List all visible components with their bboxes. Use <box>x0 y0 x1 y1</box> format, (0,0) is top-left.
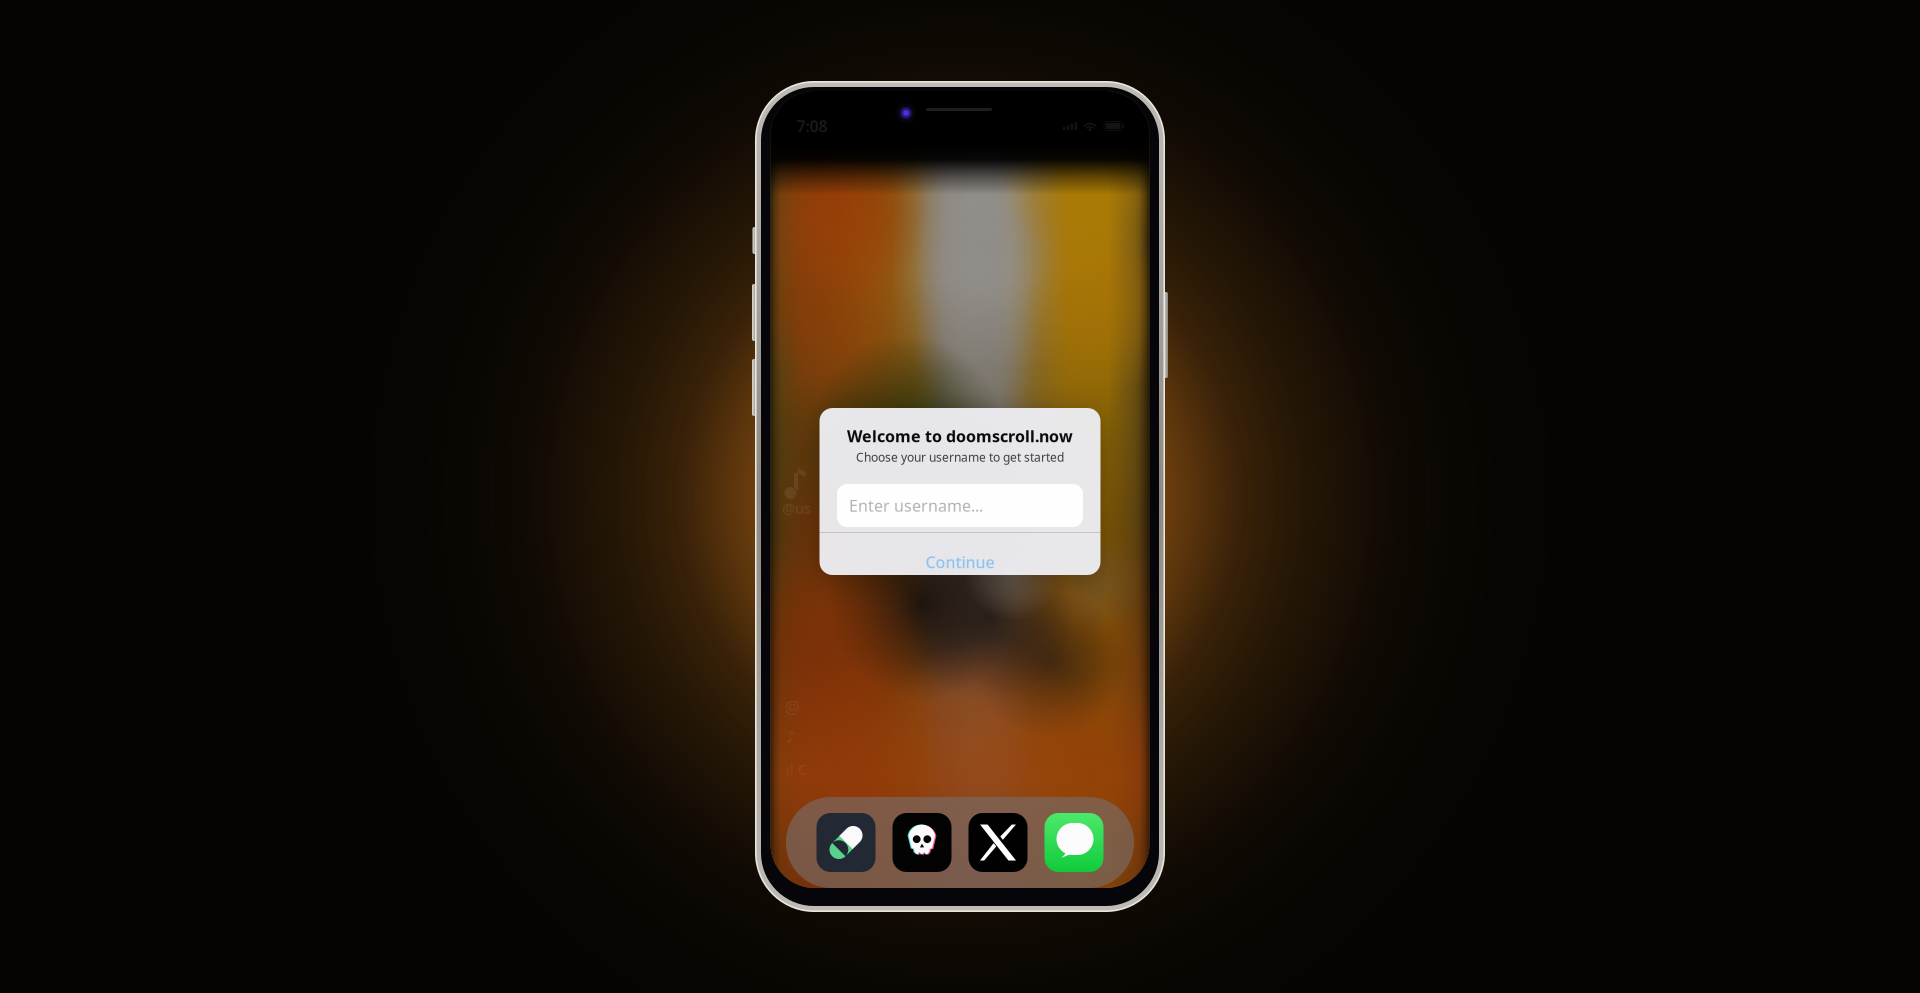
button[interactable]: Skull app <box>892 813 951 872</box>
button[interactable]: Pill app <box>816 813 875 872</box>
button[interactable]: X <box>968 813 1027 872</box>
staticText: @us <box>782 498 811 518</box>
staticText: @ <box>784 695 800 718</box>
button[interactable]: Continue <box>819 541 1100 583</box>
staticText: Welcome to doomscroll.now <box>847 425 1073 447</box>
button[interactable]: Messages <box>1044 813 1103 872</box>
staticText: Enter username... <box>849 495 983 516</box>
staticText: ♪ <box>785 728 795 746</box>
button[interactable]: Enter username... <box>837 484 1083 527</box>
staticText: Choose your username to get started <box>856 449 1064 465</box>
staticText: ıl C <box>786 759 807 779</box>
staticText: 7:08 <box>796 115 827 137</box>
staticText: Continue <box>925 551 994 573</box>
